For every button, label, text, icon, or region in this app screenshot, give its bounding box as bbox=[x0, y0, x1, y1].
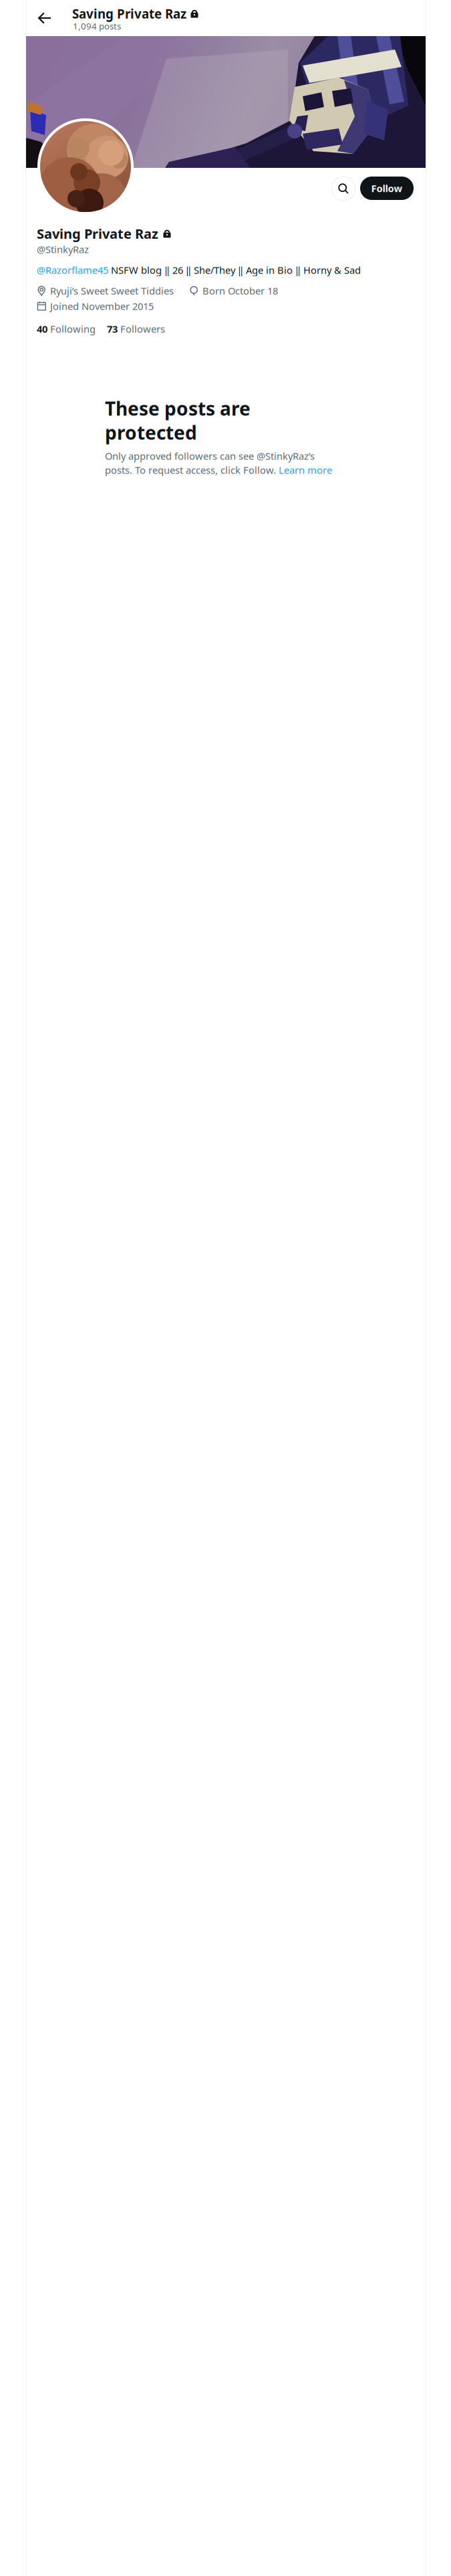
button[interactable]: 73 bbox=[107, 322, 165, 335]
staticText: posts. To request access, click Follow. bbox=[105, 463, 279, 476]
staticText: 40 bbox=[37, 322, 47, 335]
button[interactable]: Learn more bbox=[279, 463, 332, 476]
button[interactable]: 40 bbox=[37, 322, 96, 335]
staticText: Learn more bbox=[279, 463, 332, 476]
staticText: 1,094 posts bbox=[73, 20, 121, 32]
staticText: Following bbox=[50, 322, 96, 335]
staticText: NSFW blog ‖ 26 ‖ She/They ‖ Age in Bio ‖… bbox=[108, 263, 361, 277]
staticText: Followers bbox=[120, 322, 165, 335]
staticText: Saving Private Raz bbox=[72, 5, 186, 22]
staticText: These posts are bbox=[105, 396, 251, 421]
button[interactable]: Back bbox=[27, 1, 62, 35]
staticText: @Razorflame45 bbox=[37, 263, 108, 277]
button[interactable]: Search bbox=[331, 177, 355, 201]
staticText: Saving Private Raz bbox=[37, 225, 158, 242]
staticText: Ryuji’s Sweet Sweet Tiddies bbox=[50, 284, 174, 297]
button[interactable]: Follow bbox=[360, 177, 414, 200]
staticText: Born October 18 bbox=[202, 284, 278, 297]
staticText: @StinkyRaz bbox=[37, 243, 89, 256]
staticText: Only approved followers can see @StinkyR… bbox=[105, 449, 315, 462]
staticText: protected bbox=[105, 420, 197, 445]
staticText: Follow bbox=[371, 182, 403, 195]
staticText: 73 bbox=[107, 322, 118, 335]
staticText: Joined November 2015 bbox=[50, 300, 154, 313]
